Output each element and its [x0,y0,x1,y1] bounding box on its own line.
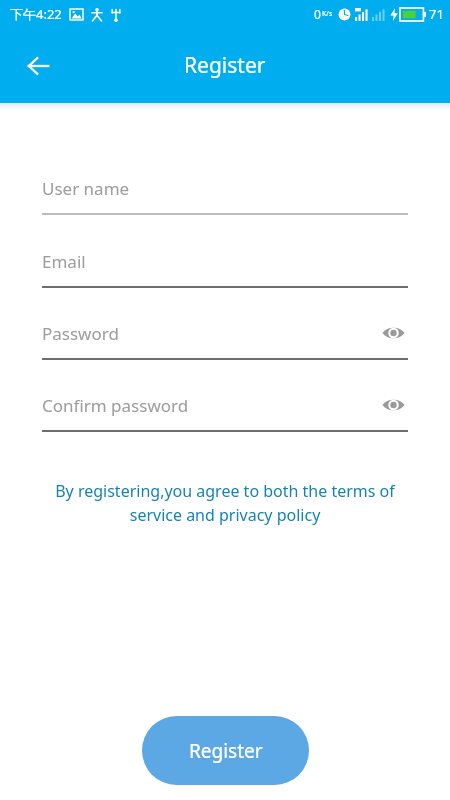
button[interactable]: Confirm password [42,389,408,432]
staticText: Confirm password [42,394,189,417]
staticText: K/s [322,9,333,19]
button[interactable]: Email [42,245,408,288]
staticText: Email [42,250,86,273]
button[interactable]: Show password [378,390,408,420]
button[interactable]: Back [12,40,64,92]
staticText: 0 [314,6,321,22]
staticText: Password [42,322,119,345]
staticText: 71 [429,5,444,23]
button[interactable]: Show password [378,318,408,348]
button[interactable]: Register [142,716,309,785]
staticText: Register [184,51,266,80]
button[interactable]: By registering,you agree to both the ter… [34,480,416,526]
staticText: 下午4:22 [10,5,62,23]
staticText: User name [42,177,130,200]
staticText: Register [189,738,263,764]
staticText: By registering,you agree to both the ter… [34,480,416,526]
button[interactable]: User name [42,172,408,215]
button[interactable]: Password [42,317,408,360]
